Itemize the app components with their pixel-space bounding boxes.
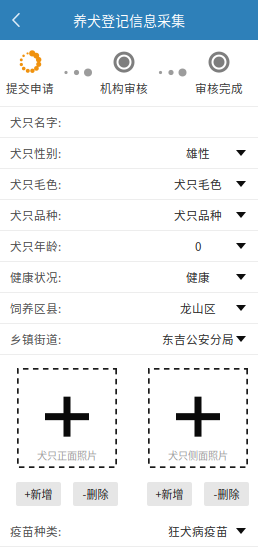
staticText: 犬只侧面照片 [168, 448, 228, 462]
button[interactable]: 犬只年龄: [0, 231, 258, 262]
staticText: 狂犬病疫苗 [168, 523, 228, 539]
staticText: 养犬登记信息采集 [73, 10, 185, 30]
staticText: 乡镇街道: [10, 331, 61, 347]
button[interactable]: -删除 [73, 482, 118, 506]
staticText: -删除 [82, 486, 108, 502]
button[interactable]: 犬只正面照片 [17, 368, 117, 468]
staticText: 龙山区 [180, 300, 216, 316]
staticText: +新增 [24, 486, 52, 502]
staticText: 审核完成 [195, 80, 243, 96]
staticText: 犬只正面照片 [37, 448, 97, 462]
staticText: 机构审核 [100, 80, 148, 96]
staticText: 犬只毛色 [174, 176, 222, 192]
staticText: -删除 [213, 486, 239, 502]
staticText: 东吉公安分局 [162, 331, 234, 347]
button[interactable]: 疫苗种类: [0, 516, 258, 547]
staticText: 犬只年龄: [10, 238, 61, 254]
button[interactable]: 饲养区县: [0, 293, 258, 324]
button[interactable]: 犬只侧面照片 [148, 368, 248, 468]
button[interactable]: 犬只性别: [0, 138, 258, 169]
staticText: 犬只性别: [10, 145, 61, 161]
staticText: 犬只毛色: [10, 176, 61, 192]
button[interactable]: +新增 [147, 482, 192, 506]
staticText: 犬只名字: [10, 114, 61, 130]
staticText: 提交申请 [6, 80, 54, 96]
button[interactable]: 健康状况: [0, 262, 258, 293]
button[interactable]: 犬只品种: [0, 200, 258, 231]
button[interactable]: 犬只毛色: [0, 169, 258, 200]
staticText: 雄性 [186, 145, 210, 161]
button[interactable]: +新增 [16, 482, 61, 506]
button[interactable]: -删除 [204, 482, 249, 506]
button[interactable]: 犬只名字: [0, 107, 258, 138]
staticText: 犬只品种: [10, 207, 61, 223]
staticText: 疫苗种类: [10, 523, 61, 539]
button[interactable]: Back [0, 4, 32, 36]
staticText: 健康 [186, 269, 210, 285]
staticText: 犬只品种 [174, 207, 222, 223]
staticText: +新增 [155, 486, 183, 502]
staticText: 饲养区县: [10, 300, 61, 316]
staticText: 0 [195, 238, 201, 254]
button[interactable]: 乡镇街道: [0, 324, 258, 355]
staticText: 健康状况: [10, 269, 61, 285]
